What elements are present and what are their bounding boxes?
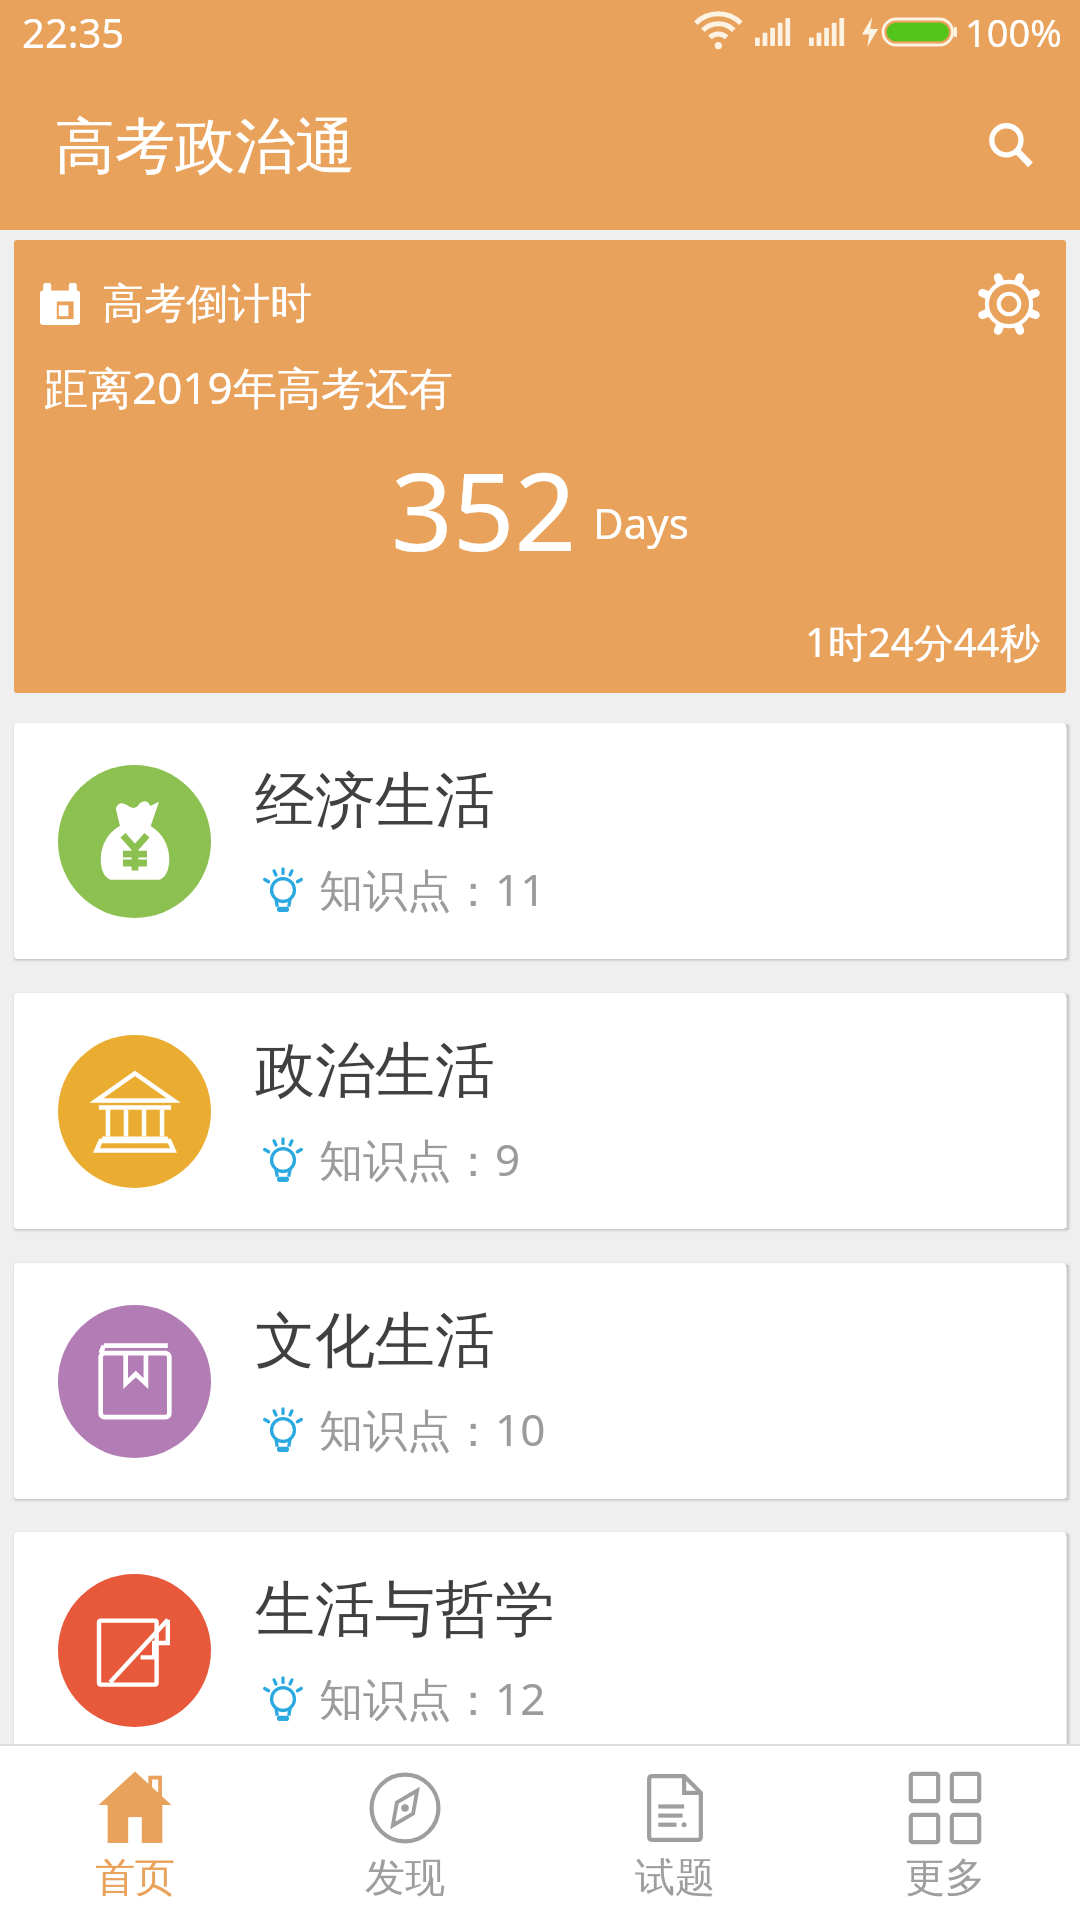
staticText: 高考倒计时 xyxy=(102,278,312,331)
staticText: 知识点：11 xyxy=(319,859,546,919)
staticText: 知识点：10 xyxy=(319,1399,546,1459)
button[interactable]: 发现 xyxy=(270,1746,540,1920)
button[interactable]: 高考倒计时 xyxy=(14,240,1066,693)
staticText: 更多 xyxy=(905,1852,985,1902)
staticText: 经济生活 xyxy=(255,763,495,839)
button[interactable] xyxy=(980,115,1044,179)
staticText: 首页 xyxy=(95,1852,175,1902)
staticText: 知识点：9 xyxy=(319,1129,521,1189)
button[interactable]: 经济生活 xyxy=(14,723,1066,959)
staticText: 22:35 xyxy=(22,5,125,59)
staticText: 高考政治通 xyxy=(55,109,355,185)
button[interactable]: 试题 xyxy=(540,1746,810,1920)
staticText: 生活与哲学 xyxy=(255,1572,555,1648)
staticText: 发现 xyxy=(365,1852,445,1902)
staticText: 知识点：12 xyxy=(319,1668,546,1728)
staticText: 1时24分44秒 xyxy=(805,614,1040,669)
button[interactable] xyxy=(976,271,1042,337)
button[interactable]: 生活与哲学 xyxy=(14,1532,1066,1768)
button[interactable]: 文化生活 xyxy=(14,1263,1066,1499)
staticText: 352 xyxy=(391,436,577,583)
button[interactable]: 政治生活 xyxy=(14,993,1066,1229)
button[interactable]: 更多 xyxy=(810,1746,1080,1920)
staticText: Days xyxy=(593,494,689,551)
staticText: 100% xyxy=(965,6,1062,58)
staticText: 距离2019年高考还有 xyxy=(44,357,453,417)
staticText: 试题 xyxy=(635,1852,715,1902)
staticText: 文化生活 xyxy=(255,1303,495,1379)
button[interactable]: 首页 xyxy=(0,1746,270,1920)
staticText: 政治生活 xyxy=(255,1033,495,1109)
